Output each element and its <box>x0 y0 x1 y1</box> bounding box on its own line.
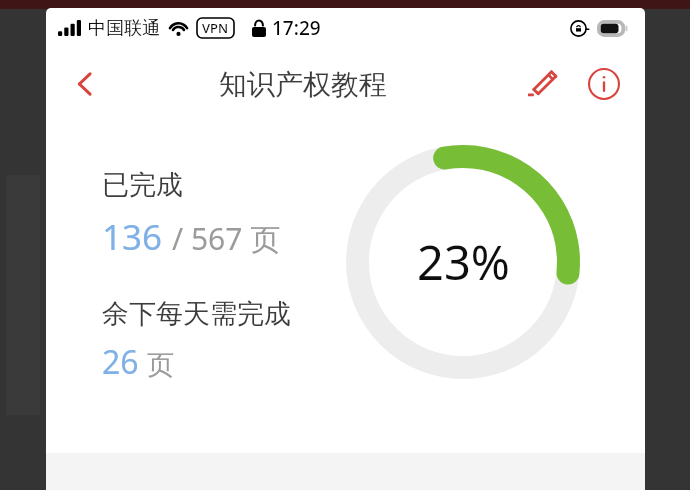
staticText: 已完成 <box>102 168 183 202</box>
staticText: 17:29 <box>272 15 321 41</box>
staticText: / 567 页 <box>172 218 281 259</box>
button[interactable]: Edit <box>519 59 569 109</box>
staticText: 知识产权教程 <box>219 67 387 102</box>
staticText: 余下每天需完成 <box>102 297 291 331</box>
staticText: 23% <box>417 230 510 294</box>
staticText: 26 <box>102 340 139 384</box>
staticText: VPN <box>202 19 229 37</box>
staticText: 页 <box>147 348 174 382</box>
staticText: 中国联通 <box>88 17 160 40</box>
button[interactable]: Information <box>579 59 629 109</box>
staticText: 136 <box>102 213 163 261</box>
button[interactable]: Back <box>58 57 112 111</box>
